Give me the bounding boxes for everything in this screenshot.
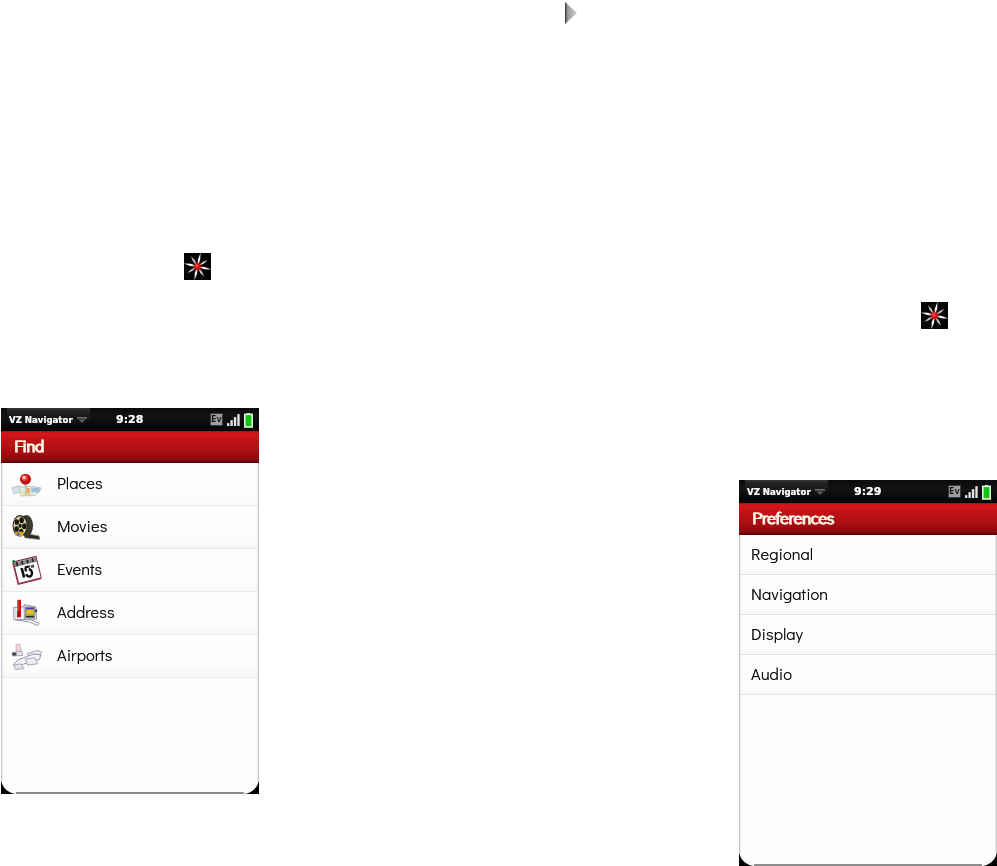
button[interactable]: VZ Navigator — [921, 302, 948, 329]
staticText: Movies — [57, 515, 108, 537]
button[interactable]: Address — [1, 592, 259, 635]
staticText: 9:28 — [116, 413, 144, 426]
staticText: Places — [57, 472, 103, 494]
staticText: Events — [57, 558, 103, 580]
staticText: Events — [57, 558, 103, 580]
staticText: VZ Navigator — [9, 415, 73, 425]
staticText: Ev — [211, 415, 222, 424]
staticText: Find — [15, 436, 45, 455]
button[interactable]: Navigation — [739, 575, 997, 615]
button[interactable]: Places — [1, 463, 259, 506]
button[interactable]: Airports — [1, 635, 259, 678]
staticText: Ev — [949, 487, 960, 496]
button[interactable]: Regional — [739, 535, 997, 575]
button[interactable]: Audio — [739, 655, 997, 695]
staticText: 9:29 — [854, 485, 882, 498]
button[interactable]: Events — [1, 549, 259, 592]
staticText: Address — [57, 601, 115, 623]
staticText: Regional — [751, 543, 814, 565]
staticText: Preferences — [753, 508, 835, 527]
staticText: Navigation — [751, 583, 829, 605]
staticText: Address — [57, 601, 115, 623]
staticText: VZ Navigator — [747, 487, 811, 497]
staticText: Display — [751, 623, 803, 645]
staticText: Find — [14, 436, 44, 455]
staticText: Movies — [57, 515, 108, 537]
staticText: Airports — [57, 644, 113, 666]
staticText: Regional — [751, 543, 814, 565]
staticText: Places — [57, 472, 103, 494]
staticText: Airports — [57, 644, 113, 666]
button[interactable]: VZ Navigator — [184, 253, 211, 280]
staticText: Navigation — [751, 583, 829, 605]
staticText: Audio — [751, 663, 792, 685]
staticText: Preferences — [752, 508, 834, 527]
staticText: Audio — [751, 663, 792, 685]
button[interactable]: Display — [739, 615, 997, 655]
button[interactable]: Movies — [1, 506, 259, 549]
staticText: Display — [751, 623, 803, 645]
